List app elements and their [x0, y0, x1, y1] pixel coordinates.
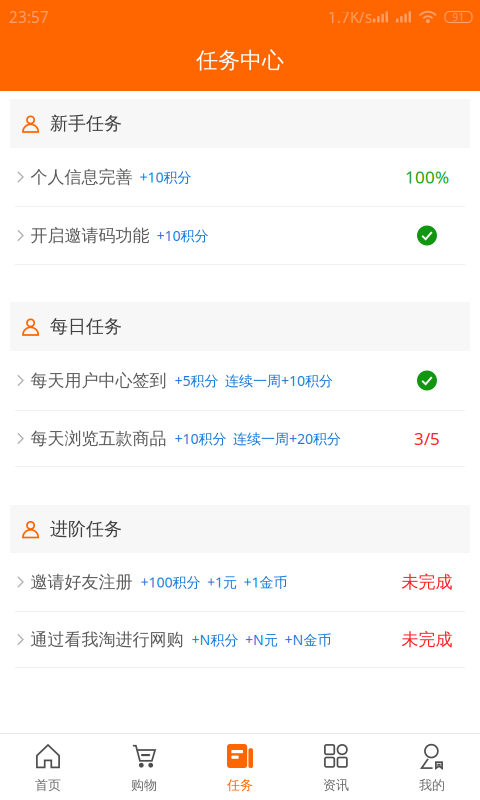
staticText: +10积分 — [174, 429, 226, 448]
staticText: 开启邀请码功能 — [30, 225, 149, 246]
staticText: 我的 — [419, 777, 445, 793]
button[interactable]: 资讯 — [288, 734, 384, 800]
staticText: 3/5 — [414, 427, 440, 450]
staticText: 资讯 — [323, 777, 349, 793]
staticText: 23:57 — [9, 7, 49, 27]
staticText: +N金币 — [284, 630, 331, 649]
staticText: 通过看我淘进行网购 — [30, 629, 183, 650]
staticText: +10积分 — [139, 167, 191, 187]
staticText: 邀请好友注册 — [30, 571, 132, 593]
staticText: 进阶任务 — [50, 518, 122, 540]
button[interactable]: 任务 — [192, 734, 288, 800]
staticText: 未完成 — [401, 629, 452, 650]
staticText: +1金币 — [243, 572, 287, 592]
staticText: 任务 — [227, 777, 253, 793]
staticText: +1元 — [207, 572, 237, 592]
button[interactable]: 个人信息完善 — [0, 148, 480, 207]
staticText: 购物 — [131, 777, 157, 793]
staticText: 新手任务 — [50, 112, 122, 135]
staticText: 每日任务 — [50, 315, 122, 338]
staticText: 连续一周+20积分 — [233, 429, 341, 448]
staticText: 首页 — [35, 777, 61, 793]
staticText: 91 — [452, 10, 464, 24]
button[interactable]: 购物 — [96, 734, 192, 800]
staticText: +10积分 — [156, 226, 208, 245]
button[interactable]: 邀请好友注册 — [0, 553, 480, 612]
button[interactable]: 通过看我淘进行网购 — [0, 612, 480, 668]
staticText: +5积分 — [174, 371, 218, 390]
button[interactable]: 我的 — [384, 734, 480, 800]
staticText: +100积分 — [140, 572, 200, 592]
staticText: 连续一周+10积分 — [225, 371, 333, 390]
staticText: 未完成 — [401, 571, 452, 593]
staticText: +N积分 — [191, 630, 238, 649]
button[interactable]: 每天用户中心签到 — [0, 351, 480, 411]
staticText: 个人信息完善 — [30, 166, 132, 188]
button[interactable]: 首页 — [0, 734, 96, 800]
staticText: 任务中心 — [196, 47, 284, 74]
staticText: 1.7K/s — [328, 7, 372, 27]
staticText: 每天浏览五款商品 — [30, 428, 166, 449]
staticText: 每天用户中心签到 — [30, 370, 166, 391]
button[interactable]: 开启邀请码功能 — [0, 207, 480, 265]
staticText: 100% — [405, 165, 449, 189]
staticText: +N元 — [245, 630, 278, 649]
button[interactable]: 每天浏览五款商品 — [0, 411, 480, 467]
